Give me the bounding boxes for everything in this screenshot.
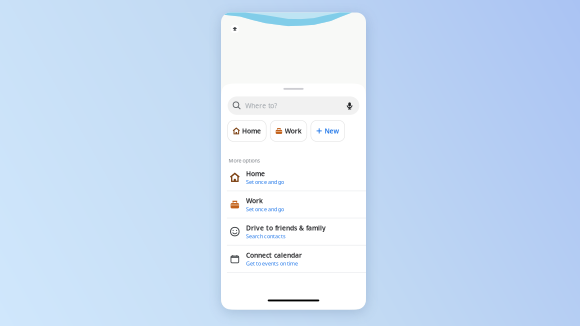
staticText: Where to? [245, 101, 277, 110]
button[interactable]: Home [228, 120, 266, 141]
button[interactable]: New [311, 120, 345, 141]
staticText: Home [246, 169, 265, 178]
button[interactable]: Connect calendar [221, 245, 366, 272]
staticText: Work [246, 196, 263, 205]
staticText: Set once and go [246, 205, 284, 213]
staticText: Home [242, 126, 261, 135]
button[interactable]: Home [221, 164, 366, 191]
staticText: Connect calendar [246, 251, 302, 259]
staticText: Work [285, 126, 302, 135]
staticText: Get to events on time [246, 260, 298, 267]
button[interactable]: Work [221, 191, 366, 218]
button[interactable]: Drive to friends & family [221, 218, 366, 245]
button[interactable]: Where to? [228, 96, 359, 115]
staticText: More options [228, 157, 260, 164]
staticText: Search contacts [246, 233, 286, 240]
button[interactable]: Work [270, 120, 307, 141]
staticText: Set once and go [246, 178, 284, 185]
button[interactable]: Map layers [231, 25, 239, 33]
staticText: New [324, 126, 339, 135]
staticText: Drive to friends & family [246, 223, 326, 232]
